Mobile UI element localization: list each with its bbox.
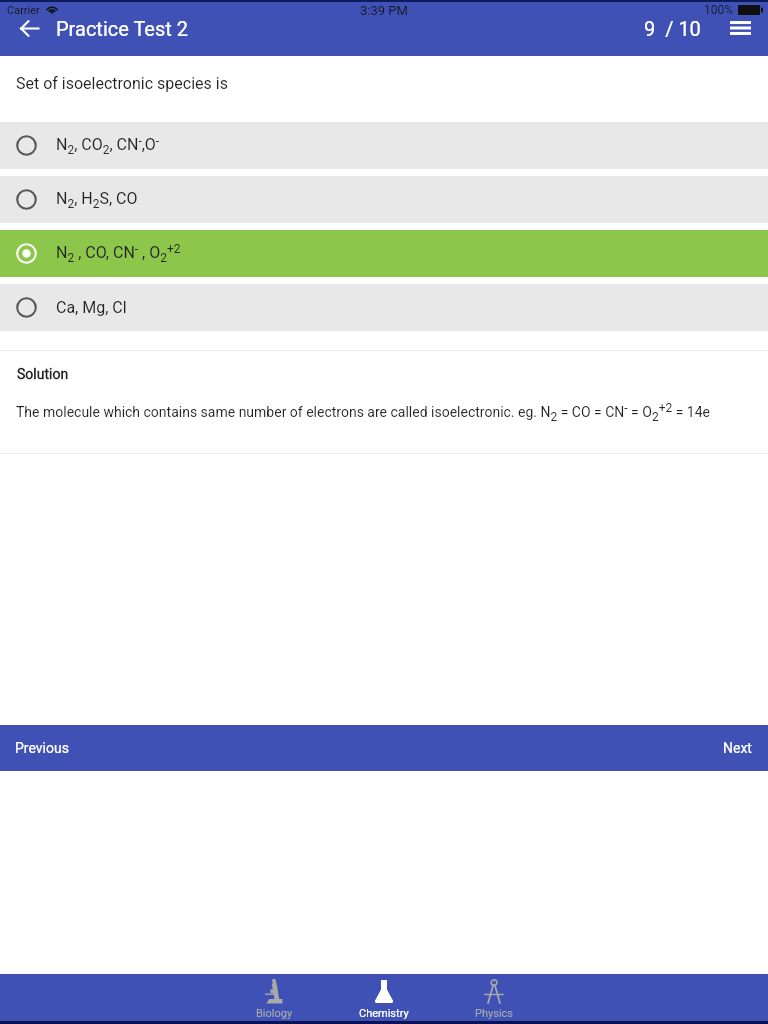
staticText: Previous xyxy=(15,740,69,756)
staticText: 9 / 10 xyxy=(644,17,701,40)
staticText: 3:39 PM xyxy=(360,3,408,18)
staticText: Set of isoelectronic species is xyxy=(16,74,228,93)
button[interactable]: Back xyxy=(9,8,49,48)
staticText: N2, CO2, CN-,O- xyxy=(56,134,160,157)
button[interactable]: Menu xyxy=(720,8,760,48)
button[interactable]: Physics xyxy=(439,974,549,1021)
staticText: Chemistry xyxy=(359,1007,409,1020)
staticText: Practice Test 2 xyxy=(56,17,189,40)
staticText: The molecule which contains same number … xyxy=(16,401,710,424)
staticText: N2, H2S, CO xyxy=(56,189,138,210)
button[interactable]: Ca, Mg, Cl xyxy=(0,284,768,331)
staticText: Carrier xyxy=(7,4,40,17)
button[interactable]: N2, H2S, CO xyxy=(0,176,768,223)
staticText: Solution xyxy=(17,366,69,382)
staticText: N2 , CO, CN- , O2+2 xyxy=(56,242,181,265)
button[interactable]: N2, CO2, CN-,O- xyxy=(0,122,768,169)
button[interactable]: Biology xyxy=(219,974,329,1021)
staticText: Biology xyxy=(256,1007,293,1020)
staticText: Next xyxy=(723,740,752,756)
button[interactable]: Chemistry xyxy=(329,974,439,1021)
staticText: Ca, Mg, Cl xyxy=(56,298,127,317)
button[interactable]: Previous xyxy=(6,734,78,762)
button[interactable]: N2 , CO, CN- , O2+2 xyxy=(0,230,768,277)
button[interactable]: Next xyxy=(714,734,761,762)
staticText: 100% xyxy=(704,3,734,17)
staticText: Physics xyxy=(475,1007,513,1020)
